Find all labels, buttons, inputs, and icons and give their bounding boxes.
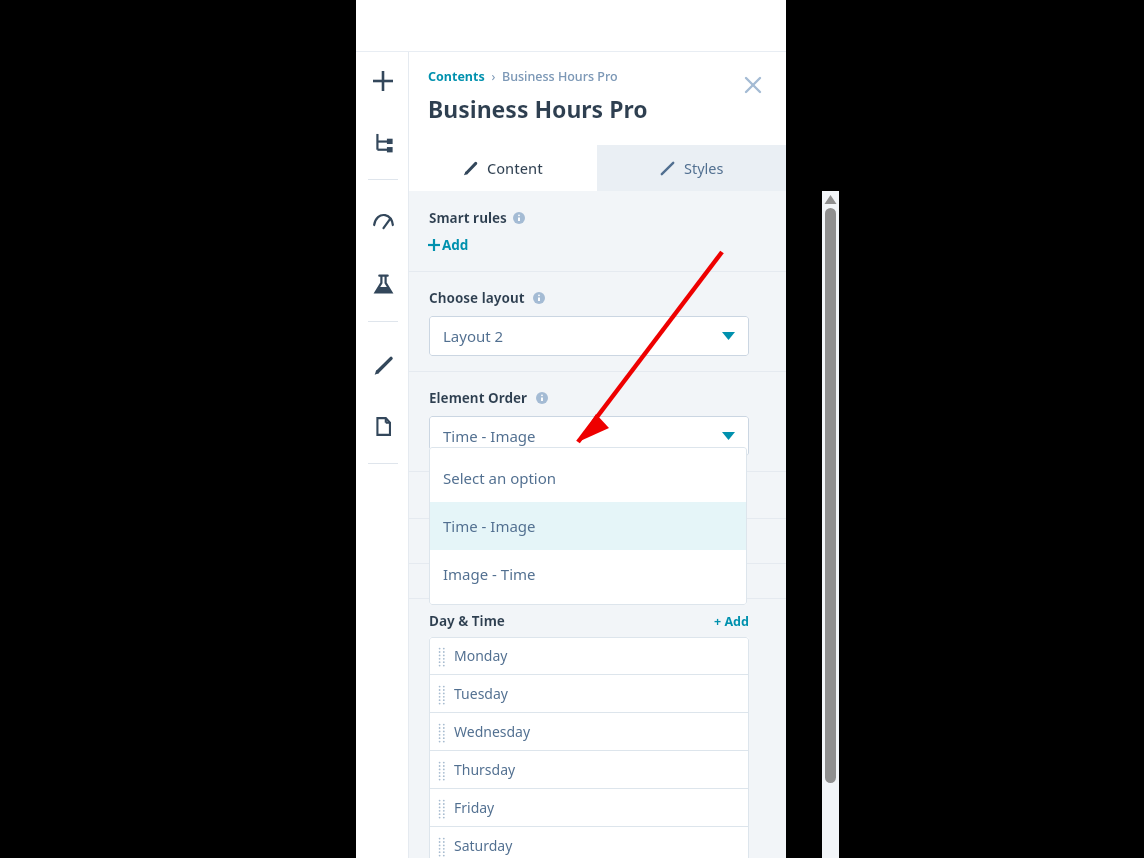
button[interactable]: Content — [409, 145, 597, 191]
staticText: Content — [487, 158, 543, 178]
staticText: Saturday — [454, 836, 513, 855]
staticText: Time - Image — [443, 426, 536, 446]
button[interactable]: Saturday — [429, 827, 749, 858]
staticText: Monday — [454, 646, 508, 665]
button[interactable]: Performance — [368, 208, 398, 238]
staticText: Styles — [684, 158, 724, 178]
button[interactable]: Time - Image — [429, 416, 749, 456]
button[interactable]: + Add — [714, 613, 749, 630]
button[interactable]: Styles — [597, 145, 786, 191]
staticText: Day & Time — [429, 612, 505, 630]
button[interactable]: Wednesday — [429, 713, 749, 750]
staticText: Friday — [454, 798, 495, 817]
button[interactable]: Tuesday — [429, 675, 749, 712]
button[interactable]: Site tree — [368, 127, 398, 157]
button[interactable]: Thursday — [429, 751, 749, 788]
button[interactable]: Add — [368, 66, 398, 96]
button[interactable]: Image - Time — [429, 550, 747, 598]
staticText: Wednesday — [454, 722, 531, 741]
staticText: Image - Time — [443, 564, 536, 584]
staticText: Smart rules — [429, 209, 507, 227]
staticText: Choose layout — [429, 289, 525, 307]
staticText: Tuesday — [454, 684, 508, 703]
button[interactable]: Friday — [429, 789, 749, 826]
button[interactable]: Monday — [429, 637, 749, 674]
button[interactable]: Design — [368, 350, 398, 380]
staticText: Time - Image — [443, 516, 536, 536]
staticText: Thursday — [454, 760, 516, 779]
staticText: Select an option — [443, 468, 557, 488]
button[interactable]: Layout 2 — [429, 316, 749, 356]
staticText: Element Order — [429, 389, 528, 407]
staticText: Business Hours Pro — [428, 93, 648, 124]
button[interactable]: Close — [740, 72, 766, 98]
button[interactable]: Experiments — [368, 269, 398, 299]
staticText: Add — [442, 236, 469, 254]
staticText: Layout 2 — [443, 326, 504, 346]
button[interactable]: Time - Image — [429, 502, 747, 550]
staticText: › — [485, 68, 502, 85]
button[interactable]: Select an option — [429, 454, 747, 502]
button[interactable]: Contents — [428, 68, 485, 85]
button[interactable]: Page — [368, 411, 398, 441]
staticText: Business Hours Pro — [502, 68, 618, 85]
button[interactable]: Add — [428, 236, 469, 254]
